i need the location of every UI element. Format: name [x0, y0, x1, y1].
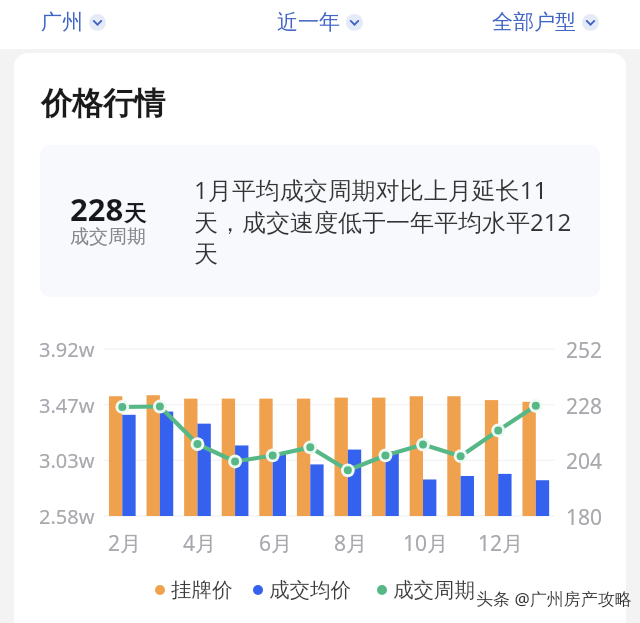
button[interactable]: 近一年 — [271, 0, 369, 44]
staticText: 成交周期 — [393, 577, 475, 603]
staticText: 3.92w — [39, 336, 95, 363]
button[interactable]: 广州 — [35, 0, 112, 44]
staticText: 204 — [566, 447, 603, 476]
staticText: 1月平均成交周期对比上月延长11天，成交速度低于一年平均水平212天 — [194, 173, 576, 269]
staticText: 成交周期 — [70, 225, 146, 249]
staticText: 3.47w — [39, 392, 95, 419]
staticText: 全部户型 — [492, 9, 576, 35]
staticText: 挂牌价 — [171, 577, 233, 603]
staticText: 天 — [124, 200, 146, 228]
button[interactable]: 全部户型 — [486, 0, 605, 44]
staticText: 228 — [70, 188, 124, 230]
staticText: 4月 — [183, 529, 217, 558]
staticText: 头条 @广州房产攻略 — [476, 587, 632, 610]
staticText: 228 — [566, 392, 603, 421]
staticText: 广州 — [41, 9, 83, 35]
staticText: 12月 — [478, 529, 524, 558]
staticText: 2月 — [108, 529, 142, 558]
staticText: 6月 — [259, 529, 293, 558]
staticText: 180 — [566, 503, 603, 532]
button[interactable]: 挂牌价 — [155, 577, 233, 603]
button[interactable]: 成交周期 — [377, 577, 475, 603]
staticText: 成交均价 — [269, 577, 351, 603]
staticText: 8月 — [334, 529, 368, 558]
staticText: 3.03w — [39, 447, 95, 474]
staticText: 252 — [566, 336, 603, 365]
staticText: 近一年 — [277, 9, 340, 35]
button[interactable]: 成交均价 — [253, 577, 351, 603]
staticText: 价格行情 — [41, 84, 165, 123]
staticText: 10月 — [403, 529, 449, 558]
staticText: 2.58w — [39, 503, 95, 530]
